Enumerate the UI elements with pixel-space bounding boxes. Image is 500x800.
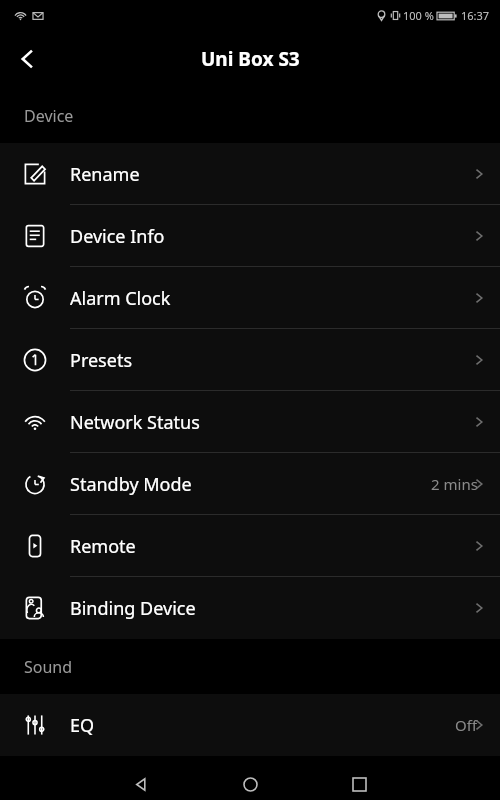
staticText: Alarm Clock (70, 286, 171, 311)
button[interactable]: Home (234, 768, 266, 800)
button[interactable]: Back (0, 31, 56, 87)
button[interactable]: Network Status (0, 391, 500, 453)
staticText: EQ (70, 713, 95, 738)
staticText: 2 mins (431, 474, 478, 494)
staticText: Sound (24, 656, 73, 678)
button[interactable]: EQ (0, 694, 500, 756)
button[interactable]: Binding Device (0, 577, 500, 639)
staticText: Standby Mode (70, 472, 192, 497)
button[interactable]: Alarm Clock (0, 267, 500, 329)
staticText: 100 % (403, 8, 434, 23)
button[interactable]: Remote (0, 515, 500, 577)
button[interactable]: Device Info (0, 205, 500, 267)
staticText: Device Info (70, 224, 165, 249)
staticText: Device (24, 105, 74, 127)
button[interactable]: Presets (0, 329, 500, 391)
button[interactable]: Recent apps (343, 768, 375, 800)
staticText: Presets (70, 348, 133, 373)
button[interactable]: Standby Mode (0, 453, 500, 515)
staticText: Uni Box S3 (201, 46, 300, 72)
button[interactable]: Back (125, 768, 157, 800)
staticText: Binding Device (70, 596, 196, 621)
staticText: Rename (70, 162, 140, 187)
button[interactable]: Rename (0, 143, 500, 205)
staticText: Remote (70, 534, 136, 559)
staticText: Off (455, 715, 478, 735)
staticText: 16:37 (461, 8, 490, 23)
staticText: Network Status (70, 410, 200, 435)
